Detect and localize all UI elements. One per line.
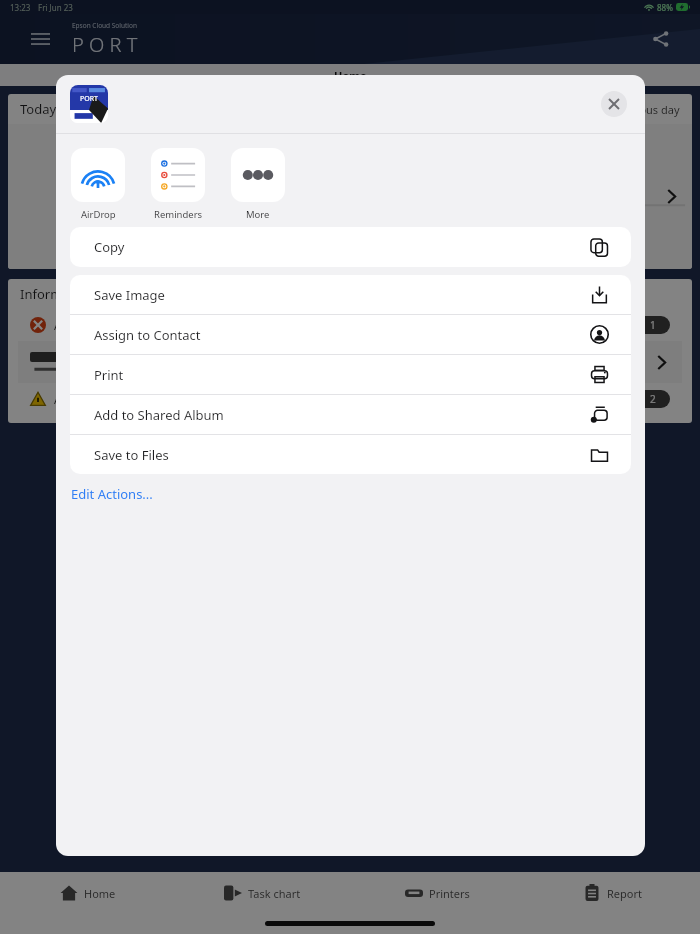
staticText: A	[54, 318, 62, 333]
staticText: Report	[607, 886, 642, 901]
staticText: Save to Files	[94, 446, 169, 464]
staticText: Epson Cloud Solution	[72, 21, 137, 30]
staticText: Home	[84, 886, 116, 901]
button[interactable]: Reminders	[150, 148, 206, 221]
staticText: Today	[20, 100, 57, 118]
staticText: Edit Actions...	[71, 485, 153, 503]
button[interactable]: Printers	[350, 872, 525, 914]
staticText: Reminders	[154, 208, 203, 221]
staticText: Printers	[429, 886, 470, 901]
staticText: Task chart	[248, 886, 301, 901]
button[interactable]: Save Image	[70, 275, 631, 315]
button[interactable]: Task chart	[175, 872, 350, 914]
staticText: Previous day	[614, 102, 680, 117]
button[interactable]: Information	[8, 279, 692, 423]
staticText: More	[246, 208, 270, 221]
button[interactable]: Close	[601, 91, 627, 117]
staticText: 13:23	[10, 2, 31, 13]
staticText: 2	[650, 392, 656, 406]
staticText: 1	[650, 318, 656, 332]
button[interactable]: Copy	[70, 227, 631, 267]
staticText: Save Image	[94, 286, 165, 304]
button[interactable]: Print	[70, 355, 631, 395]
button[interactable]: AirDrop	[70, 148, 126, 221]
staticText: Home	[334, 68, 367, 83]
button[interactable]: Save to Files	[70, 435, 631, 474]
staticText: Assign to Contact	[94, 326, 201, 344]
staticText: PORT	[80, 94, 98, 104]
staticText: Fri Jun 23	[38, 2, 73, 13]
staticText: AirDrop	[81, 208, 116, 221]
staticText: 88%	[657, 2, 673, 13]
button[interactable]: Share	[644, 22, 678, 56]
staticText: A	[54, 392, 62, 407]
button[interactable]: Edit Actions...	[70, 474, 631, 514]
button[interactable]: Home	[0, 872, 175, 914]
staticText: Print	[94, 366, 124, 384]
button[interactable]: Assign to Contact	[70, 315, 631, 355]
button[interactable]: Report	[525, 872, 700, 914]
button[interactable]: Add to Shared Album	[70, 395, 631, 435]
staticText: Add to Shared Album	[94, 406, 224, 424]
button[interactable]: More	[230, 148, 286, 221]
button[interactable]: Menu	[26, 25, 54, 53]
button[interactable]: Today	[8, 94, 692, 269]
staticText: Information	[20, 285, 94, 303]
staticText: P O R T	[72, 31, 138, 58]
staticText: Copy	[94, 238, 125, 256]
